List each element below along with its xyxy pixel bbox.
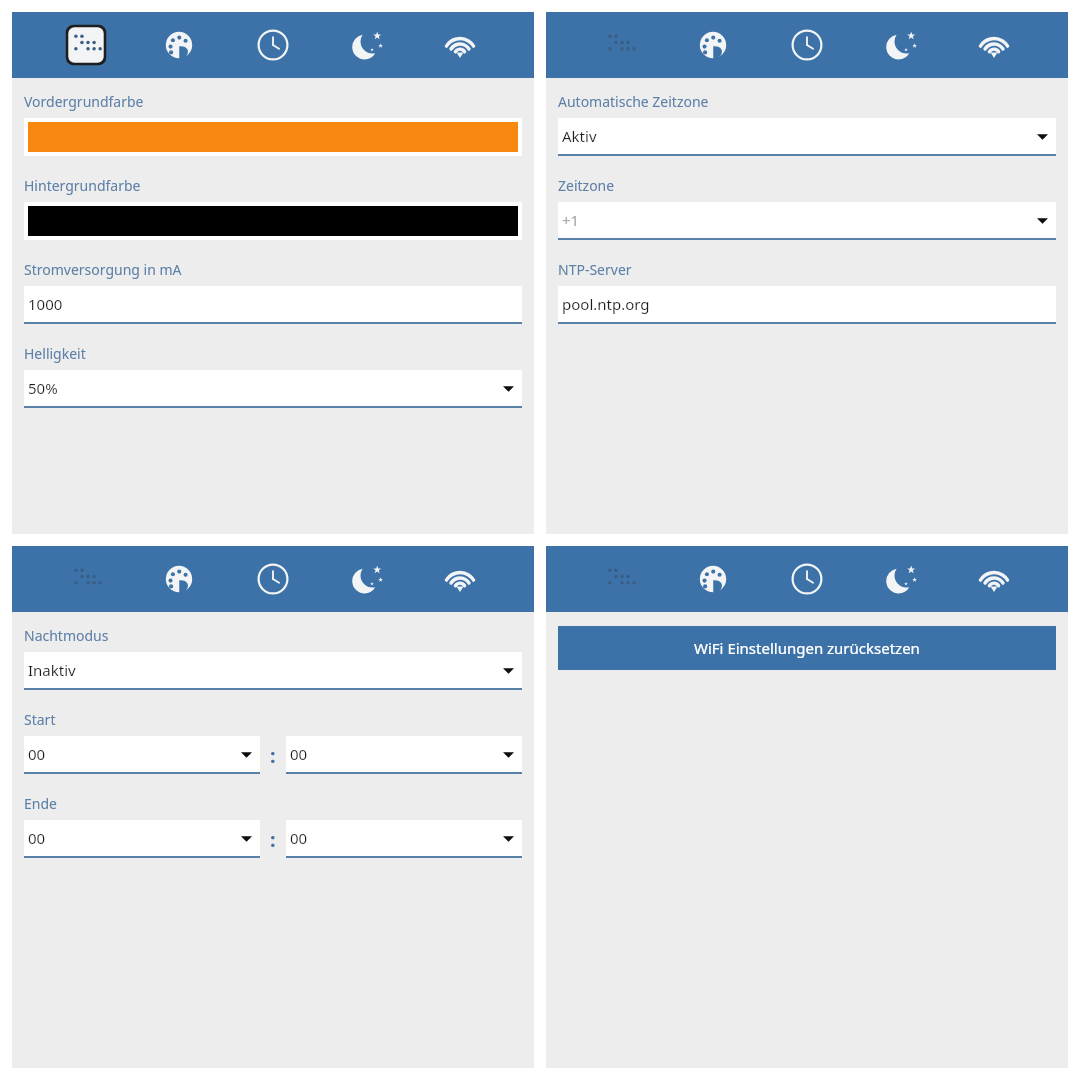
staticText: Helligkeit [24, 344, 86, 363]
button[interactable]: Matrix [60, 19, 112, 71]
staticText: : [270, 826, 276, 853]
staticText: 1000 [28, 294, 63, 314]
button[interactable]: Nachtmodus [341, 19, 393, 71]
staticText: +1 [562, 210, 580, 230]
button[interactable]: Nachtmodus [341, 553, 393, 605]
button[interactable]: Zeit [781, 19, 833, 71]
button[interactable]: Nachtmodus [875, 553, 927, 605]
staticText: pool.ntp.org [562, 294, 650, 314]
button[interactable]: WiFi Einstellungen zurücksetzen [558, 626, 1056, 670]
button[interactable]: 00 [24, 736, 260, 774]
staticText: 00 [28, 744, 46, 764]
button[interactable]: Zeit [247, 19, 299, 71]
button[interactable]: +1 [558, 202, 1056, 240]
button[interactable]: 00 [286, 820, 522, 858]
staticText: NTP-Server [558, 260, 632, 279]
button[interactable]: WLAN [968, 19, 1020, 71]
staticText: Zeitzone [558, 176, 615, 195]
staticText: Hintergrundfarbe [24, 176, 141, 195]
staticText: : [270, 742, 276, 769]
button[interactable]: Farben [153, 19, 205, 71]
staticText: 00 [290, 828, 308, 848]
button[interactable]: WLAN [968, 553, 1020, 605]
button[interactable]: Farben [687, 19, 739, 71]
staticText: Inaktiv [28, 660, 76, 680]
button[interactable]: Farben [153, 553, 205, 605]
staticText: 00 [290, 744, 308, 764]
staticText: 50% [28, 378, 58, 398]
staticText: Ende [24, 794, 57, 813]
staticText: 00 [28, 828, 46, 848]
button[interactable]: 1000 [24, 286, 522, 324]
button[interactable]: Matrix [594, 19, 646, 71]
button[interactable]: Inaktiv [24, 652, 522, 690]
button[interactable]: Zeit [247, 553, 299, 605]
button[interactable]: WLAN [434, 19, 486, 71]
button[interactable]: Nachtmodus [875, 19, 927, 71]
staticText: Automatische Zeitzone [558, 92, 709, 111]
button[interactable]: Zeit [781, 553, 833, 605]
staticText: Stromversorgung in mA [24, 260, 182, 279]
staticText: Start [24, 710, 56, 729]
button[interactable]: Aktiv [558, 118, 1056, 156]
button[interactable]: Farben [687, 553, 739, 605]
button[interactable]: pool.ntp.org [558, 286, 1056, 324]
staticText: Vordergrundfarbe [24, 92, 144, 111]
staticText: WiFi Einstellungen zurücksetzen [694, 638, 920, 658]
button[interactable]: 00 [286, 736, 522, 774]
button[interactable]: Matrix [594, 553, 646, 605]
button[interactable]: 50% [24, 370, 522, 408]
button[interactable]: Matrix [60, 553, 112, 605]
staticText: Nachtmodus [24, 626, 109, 645]
staticText: Aktiv [562, 126, 597, 146]
button[interactable]: WLAN [434, 553, 486, 605]
button[interactable]: 00 [24, 820, 260, 858]
